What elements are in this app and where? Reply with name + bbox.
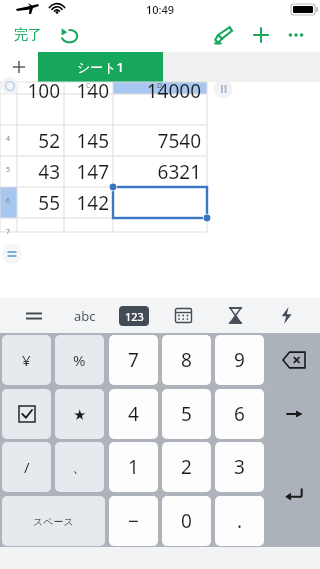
staticText: 6321 bbox=[157, 159, 201, 185]
button[interactable]: 52 bbox=[17, 125, 64, 156]
button[interactable]: 6 bbox=[215, 389, 264, 439]
staticText: 7540 bbox=[157, 128, 201, 154]
button[interactable]: 140 bbox=[64, 75, 113, 106]
staticText: 1 bbox=[128, 454, 139, 480]
button[interactable]: 7 bbox=[109, 335, 158, 385]
staticText: スペース bbox=[33, 515, 74, 528]
staticText: 4 bbox=[6, 134, 11, 144]
button[interactable]: 14000 bbox=[113, 75, 205, 106]
button[interactable]: Time bbox=[217, 298, 253, 333]
staticText: 55 bbox=[38, 190, 60, 216]
staticText: 6 bbox=[6, 196, 11, 206]
staticText: 8 bbox=[181, 347, 192, 373]
staticText: 5 bbox=[181, 401, 192, 427]
button[interactable]: 0 bbox=[162, 496, 211, 546]
button[interactable]: スペース bbox=[2, 496, 105, 546]
staticText: 7 bbox=[6, 227, 11, 237]
button[interactable]: 3 bbox=[215, 442, 264, 492]
staticText: 5 bbox=[6, 165, 11, 175]
staticText: 9 bbox=[234, 347, 245, 373]
button[interactable]: 6321 bbox=[113, 156, 205, 187]
staticText: abc bbox=[74, 307, 96, 325]
staticText: 145 bbox=[76, 128, 109, 154]
button[interactable]: ★ bbox=[55, 389, 104, 439]
staticText: 43 bbox=[38, 159, 60, 185]
button[interactable]: 7540 bbox=[113, 125, 205, 156]
button[interactable]: 5 bbox=[162, 389, 211, 439]
button[interactable]: More options bbox=[282, 21, 310, 49]
staticText: 52 bbox=[38, 128, 60, 154]
button[interactable]: 145 bbox=[64, 125, 113, 156]
button[interactable]: Undo bbox=[56, 21, 84, 49]
staticText: % bbox=[73, 350, 86, 370]
button[interactable]: / bbox=[2, 442, 51, 492]
staticText: シート1 bbox=[77, 58, 125, 76]
staticText: 4 bbox=[128, 401, 139, 427]
button[interactable]: 完了 bbox=[10, 22, 46, 48]
button[interactable]: 2 bbox=[162, 442, 211, 492]
button[interactable]: Add bbox=[246, 20, 276, 50]
button[interactable]: . bbox=[215, 496, 264, 546]
button[interactable]: 4 bbox=[109, 389, 158, 439]
staticText: 7 bbox=[128, 347, 139, 373]
staticText: 0 bbox=[181, 508, 192, 534]
staticText: D bbox=[157, 81, 163, 91]
button[interactable]: Next bbox=[269, 389, 318, 439]
staticText: − bbox=[128, 508, 139, 534]
button[interactable]: Menu bbox=[16, 298, 52, 333]
staticText: 2 bbox=[181, 454, 192, 480]
staticText: 123 bbox=[125, 309, 144, 324]
staticText: 6 bbox=[234, 401, 245, 427]
button[interactable]: Quick bbox=[268, 298, 304, 333]
button[interactable]: Return bbox=[269, 442, 318, 545]
button[interactable]: 1 bbox=[109, 442, 158, 492]
button[interactable]: シート1 bbox=[38, 52, 163, 82]
button[interactable]: 、 bbox=[55, 442, 104, 492]
staticText: 10:49 bbox=[146, 2, 175, 17]
button[interactable]: Delete bbox=[269, 335, 318, 385]
button[interactable]: 9 bbox=[215, 335, 264, 385]
button[interactable]: Add sheet bbox=[0, 52, 38, 82]
button[interactable]: 43 bbox=[17, 156, 64, 187]
button[interactable]: ¥ bbox=[2, 335, 51, 385]
button[interactable]: Highlighter bbox=[208, 20, 238, 50]
button[interactable]: Check bbox=[2, 389, 51, 439]
button[interactable]: − bbox=[109, 496, 158, 546]
button[interactable]: 55 bbox=[17, 187, 64, 218]
staticText: 142 bbox=[76, 190, 109, 216]
button[interactable]: Date bbox=[165, 298, 201, 333]
staticText: . bbox=[237, 508, 243, 534]
staticText: 147 bbox=[76, 159, 109, 185]
button[interactable]: abc bbox=[67, 298, 103, 333]
staticText: 100 bbox=[27, 78, 60, 104]
button[interactable]: 100 bbox=[17, 75, 64, 106]
button[interactable]: 142 bbox=[64, 187, 113, 218]
button[interactable]: % bbox=[55, 335, 104, 385]
button[interactable]: 147 bbox=[64, 156, 113, 187]
staticText: 14000 bbox=[146, 78, 201, 104]
button[interactable]: 8 bbox=[162, 335, 211, 385]
staticText: C bbox=[86, 81, 91, 91]
staticText: 3 bbox=[234, 454, 245, 480]
staticText: 、 bbox=[72, 458, 87, 477]
staticText: 140 bbox=[76, 78, 109, 104]
staticText: ¥ bbox=[22, 350, 31, 370]
button[interactable]: 123 bbox=[119, 306, 149, 326]
staticText: / bbox=[24, 457, 30, 477]
staticText: 完了 bbox=[14, 26, 42, 44]
staticText: ★ bbox=[73, 406, 87, 423]
